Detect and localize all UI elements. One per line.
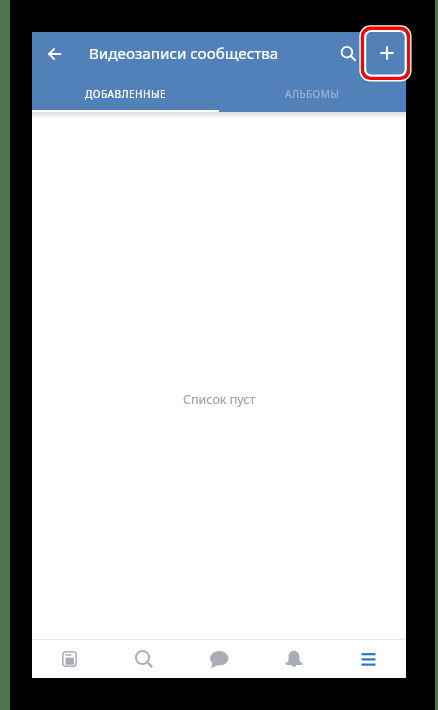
staticText: Видеозаписи сообщества (89, 43, 279, 64)
button[interactable]: Add video (371, 37, 403, 69)
button[interactable]: News (32, 640, 106, 678)
button[interactable]: Search (106, 640, 181, 678)
staticText: АЛЬБОМЫ (285, 87, 340, 101)
button[interactable]: Back (38, 37, 71, 70)
button[interactable]: Search (333, 38, 365, 70)
button[interactable]: Notifications (256, 640, 331, 678)
staticText: ДОБАВЛЕННЫЕ (85, 87, 167, 101)
staticText: Список пуст (183, 391, 256, 408)
button[interactable]: Messages (181, 640, 256, 678)
button[interactable]: АЛЬБОМЫ (219, 80, 406, 112)
button[interactable]: ДОБАВЛЕННЫЕ (32, 80, 219, 112)
button[interactable]: Menu (331, 640, 406, 678)
